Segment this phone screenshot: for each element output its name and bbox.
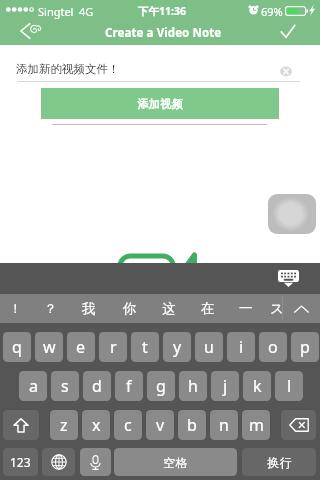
staticText: 添加新的视频文件！ xyxy=(16,62,120,76)
staticText: 你 xyxy=(123,300,137,317)
button[interactable]: w xyxy=(35,332,63,362)
staticText: 换行 xyxy=(267,455,292,470)
staticText: ！ xyxy=(9,301,22,317)
button[interactable]: q xyxy=(3,332,31,362)
button[interactable]: e xyxy=(67,332,95,362)
button[interactable]: r xyxy=(99,332,127,362)
staticText: d xyxy=(92,375,102,397)
button[interactable]: o xyxy=(259,332,287,362)
staticText: 在 xyxy=(201,300,215,317)
staticText: 69% xyxy=(261,4,283,19)
staticText: x xyxy=(92,414,101,436)
button[interactable]: Hide keyboard xyxy=(278,270,299,287)
staticText: Singtel xyxy=(38,4,74,19)
button[interactable]: 我 xyxy=(72,294,106,323)
button[interactable]: Voice input xyxy=(80,448,111,476)
button[interactable]: Back xyxy=(0,20,52,45)
staticText: f xyxy=(126,375,132,397)
button[interactable]: h xyxy=(179,371,207,401)
staticText: g xyxy=(156,375,166,397)
staticText: u xyxy=(204,336,214,358)
button[interactable]: m xyxy=(242,410,270,440)
button[interactable]: y xyxy=(163,332,191,362)
button[interactable]: t xyxy=(131,332,159,362)
button[interactable]: 一 xyxy=(229,294,263,323)
button[interactable]: Clear text xyxy=(280,65,294,78)
button[interactable]: Done xyxy=(274,20,320,45)
button[interactable]: c xyxy=(114,410,142,440)
button[interactable]: n xyxy=(210,410,238,440)
button[interactable]: f xyxy=(115,371,143,401)
button[interactable]: b xyxy=(178,410,206,440)
button[interactable]: j xyxy=(211,371,239,401)
staticText: v xyxy=(156,414,165,436)
staticText: 123 xyxy=(10,454,31,470)
staticText: ス xyxy=(270,300,284,317)
button[interactable]: Shift xyxy=(3,410,39,440)
staticText: p xyxy=(300,336,310,358)
button[interactable]: l xyxy=(275,371,303,401)
staticText: h xyxy=(188,375,198,397)
staticText: ？ xyxy=(44,301,57,317)
button[interactable]: Recorded video thumbnail xyxy=(268,194,316,234)
button[interactable]: z xyxy=(50,410,78,440)
button[interactable]: ス xyxy=(260,294,294,323)
staticText: q xyxy=(12,336,22,358)
staticText: a xyxy=(29,375,38,397)
staticText: b xyxy=(187,414,197,436)
staticText: Create a Video Note xyxy=(105,25,222,41)
button[interactable]: i xyxy=(227,332,255,362)
button[interactable]: 空格 xyxy=(114,448,237,476)
staticText: t xyxy=(142,336,148,358)
staticText: e xyxy=(76,336,86,358)
button[interactable]: p xyxy=(291,332,319,362)
button[interactable]: 你 xyxy=(113,294,147,323)
staticText: 一 xyxy=(239,300,253,317)
button[interactable]: x xyxy=(82,410,110,440)
button[interactable]: ？ xyxy=(33,294,67,323)
staticText: w xyxy=(43,336,56,358)
staticText: 我 xyxy=(82,300,96,317)
staticText: r xyxy=(110,336,117,358)
staticText: o xyxy=(268,336,278,358)
staticText: 空格 xyxy=(163,455,188,470)
staticText: k xyxy=(253,375,262,397)
button[interactable]: 添加视频 xyxy=(41,88,279,119)
button[interactable]: k xyxy=(243,371,271,401)
staticText: 4G xyxy=(79,4,94,19)
button[interactable]: Switch language xyxy=(42,448,75,476)
button[interactable]: v xyxy=(146,410,174,440)
staticText: y xyxy=(173,336,182,358)
button[interactable]: d xyxy=(83,371,111,401)
button[interactable]: u xyxy=(195,332,223,362)
button[interactable]: ！ xyxy=(0,294,32,323)
button[interactable]: 123 xyxy=(3,448,38,476)
button[interactable]: 这 xyxy=(152,294,186,323)
staticText: j xyxy=(223,375,228,397)
staticText: 添加视频 xyxy=(137,97,183,111)
staticText: s xyxy=(61,375,69,397)
staticText: c xyxy=(124,414,132,436)
button[interactable]: a xyxy=(19,371,47,401)
button[interactable]: 在 xyxy=(191,294,225,323)
button[interactable]: Expand suggestions xyxy=(283,294,320,323)
button[interactable]: g xyxy=(147,371,175,401)
button[interactable]: s xyxy=(51,371,79,401)
staticText: 这 xyxy=(162,300,176,317)
button[interactable]: 换行 xyxy=(242,448,316,476)
button[interactable]: Backspace xyxy=(281,410,316,440)
staticText: z xyxy=(60,414,68,436)
staticText: l xyxy=(287,375,292,397)
staticText: 下午11:36 xyxy=(138,4,186,18)
staticText: n xyxy=(219,414,229,436)
staticText: i xyxy=(239,336,244,358)
staticText: m xyxy=(249,414,264,436)
